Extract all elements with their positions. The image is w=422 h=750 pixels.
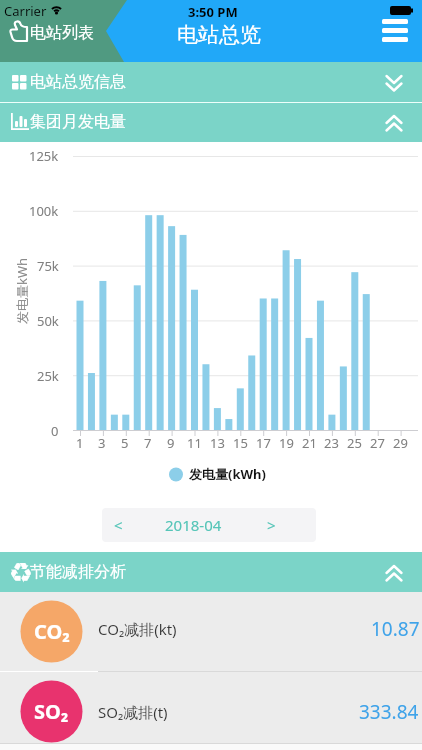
staticText: 333.84 [359, 699, 419, 725]
staticText: SO₂减排(t) [98, 702, 168, 722]
staticText: 21 [302, 434, 317, 452]
staticText: < [114, 515, 123, 535]
staticText: 0 [51, 422, 59, 440]
staticText: SO₂ [34, 698, 69, 725]
staticText: 100k [29, 202, 59, 220]
staticText: 15 [233, 434, 248, 452]
staticText: 3 [98, 434, 106, 452]
staticText: 5 [121, 434, 129, 452]
button[interactable]: ♻ [0, 552, 422, 592]
staticText: 29 [393, 434, 408, 452]
staticText: > [267, 515, 276, 535]
staticText: 13 [210, 434, 225, 452]
staticText: 3:50 PM [188, 3, 238, 21]
button[interactable]: 2018-04 [157, 508, 229, 542]
staticText: CO₂减排(kt) [98, 619, 177, 639]
button[interactable]: < [102, 508, 134, 542]
staticText: 25 [347, 434, 362, 452]
button[interactable]: 集团月发电量 [0, 103, 422, 142]
staticText: 电站总览 [177, 22, 261, 48]
button[interactable]: 电站总览信息 [0, 62, 422, 102]
button[interactable]: > [255, 508, 287, 542]
button[interactable]: CO₂ [0, 592, 422, 671]
staticText: 25k [37, 367, 59, 385]
staticText: 电站总览信息 [30, 72, 126, 92]
staticText: 17 [256, 434, 271, 452]
staticText: 1 [76, 434, 84, 452]
button[interactable]: 电站列表 [0, 14, 112, 62]
button[interactable]: SO₂ [0, 672, 422, 743]
staticText: ♻ [9, 557, 33, 588]
staticText: 27 [370, 434, 385, 452]
staticText: 75k [37, 257, 59, 275]
staticText: 电站列表 [30, 23, 94, 43]
staticText: 125k [29, 147, 59, 165]
staticText: 发电量kWh [13, 257, 30, 324]
staticText: 11 [187, 434, 202, 452]
staticText: 2018-04 [165, 515, 222, 535]
staticText: 50k [37, 312, 59, 330]
staticText: 集团月发电量 [30, 112, 126, 132]
staticText: 23 [324, 434, 339, 452]
staticText: CO₂ [34, 618, 70, 645]
staticText: 发电量(kWh) [189, 465, 266, 483]
staticText: 19 [279, 434, 294, 452]
staticText: 节能减排分析 [30, 562, 126, 582]
button[interactable] [376, 13, 414, 47]
staticText: 9 [167, 434, 175, 452]
staticText: 10.87 [371, 616, 420, 642]
staticText: 7 [144, 434, 152, 452]
staticText: Carrier [4, 2, 47, 20]
